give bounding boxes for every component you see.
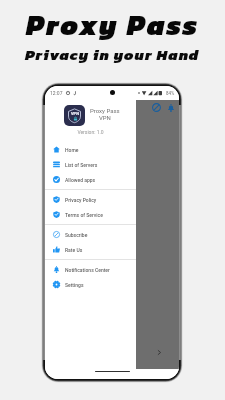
staticText: Privacy Policy xyxy=(65,197,97,203)
button[interactable]: Subscribe xyxy=(45,227,136,242)
button[interactable]: VPN disconnected xyxy=(152,103,161,112)
staticText: Notifications Center xyxy=(65,267,110,273)
staticText: Subscribe xyxy=(65,232,88,238)
staticText: Privacy in your Hand xyxy=(25,43,200,65)
staticText: Proxy Pass xyxy=(90,107,120,114)
button[interactable]: Privacy Policy xyxy=(45,192,136,207)
button[interactable]: Rate Us xyxy=(45,242,136,257)
button[interactable]: Notifications Center xyxy=(45,262,136,277)
button[interactable]: Open xyxy=(156,349,163,356)
staticText: Settings xyxy=(65,282,84,288)
staticText: Version: 1.0 xyxy=(77,129,104,135)
button[interactable]: Home xyxy=(45,142,136,157)
button[interactable]: Terms of Service xyxy=(45,207,136,222)
staticText: Rate Us xyxy=(65,247,83,253)
staticText: VPN xyxy=(99,114,111,121)
button[interactable]: Allowed apps xyxy=(45,172,136,187)
staticText: VPN xyxy=(71,111,79,116)
staticText: 84% xyxy=(166,91,175,96)
staticText: Proxy Pass xyxy=(26,4,200,46)
staticText: Terms of Service xyxy=(65,212,103,218)
button[interactable]: List of Servers xyxy=(45,157,136,172)
staticText: 12:07 xyxy=(50,90,63,96)
button[interactable]: Settings xyxy=(45,277,136,292)
staticText: Allowed apps xyxy=(65,177,96,183)
staticText: Home xyxy=(65,147,79,153)
staticText: List of Servers xyxy=(65,162,98,168)
button[interactable]: Notifications xyxy=(167,104,175,112)
